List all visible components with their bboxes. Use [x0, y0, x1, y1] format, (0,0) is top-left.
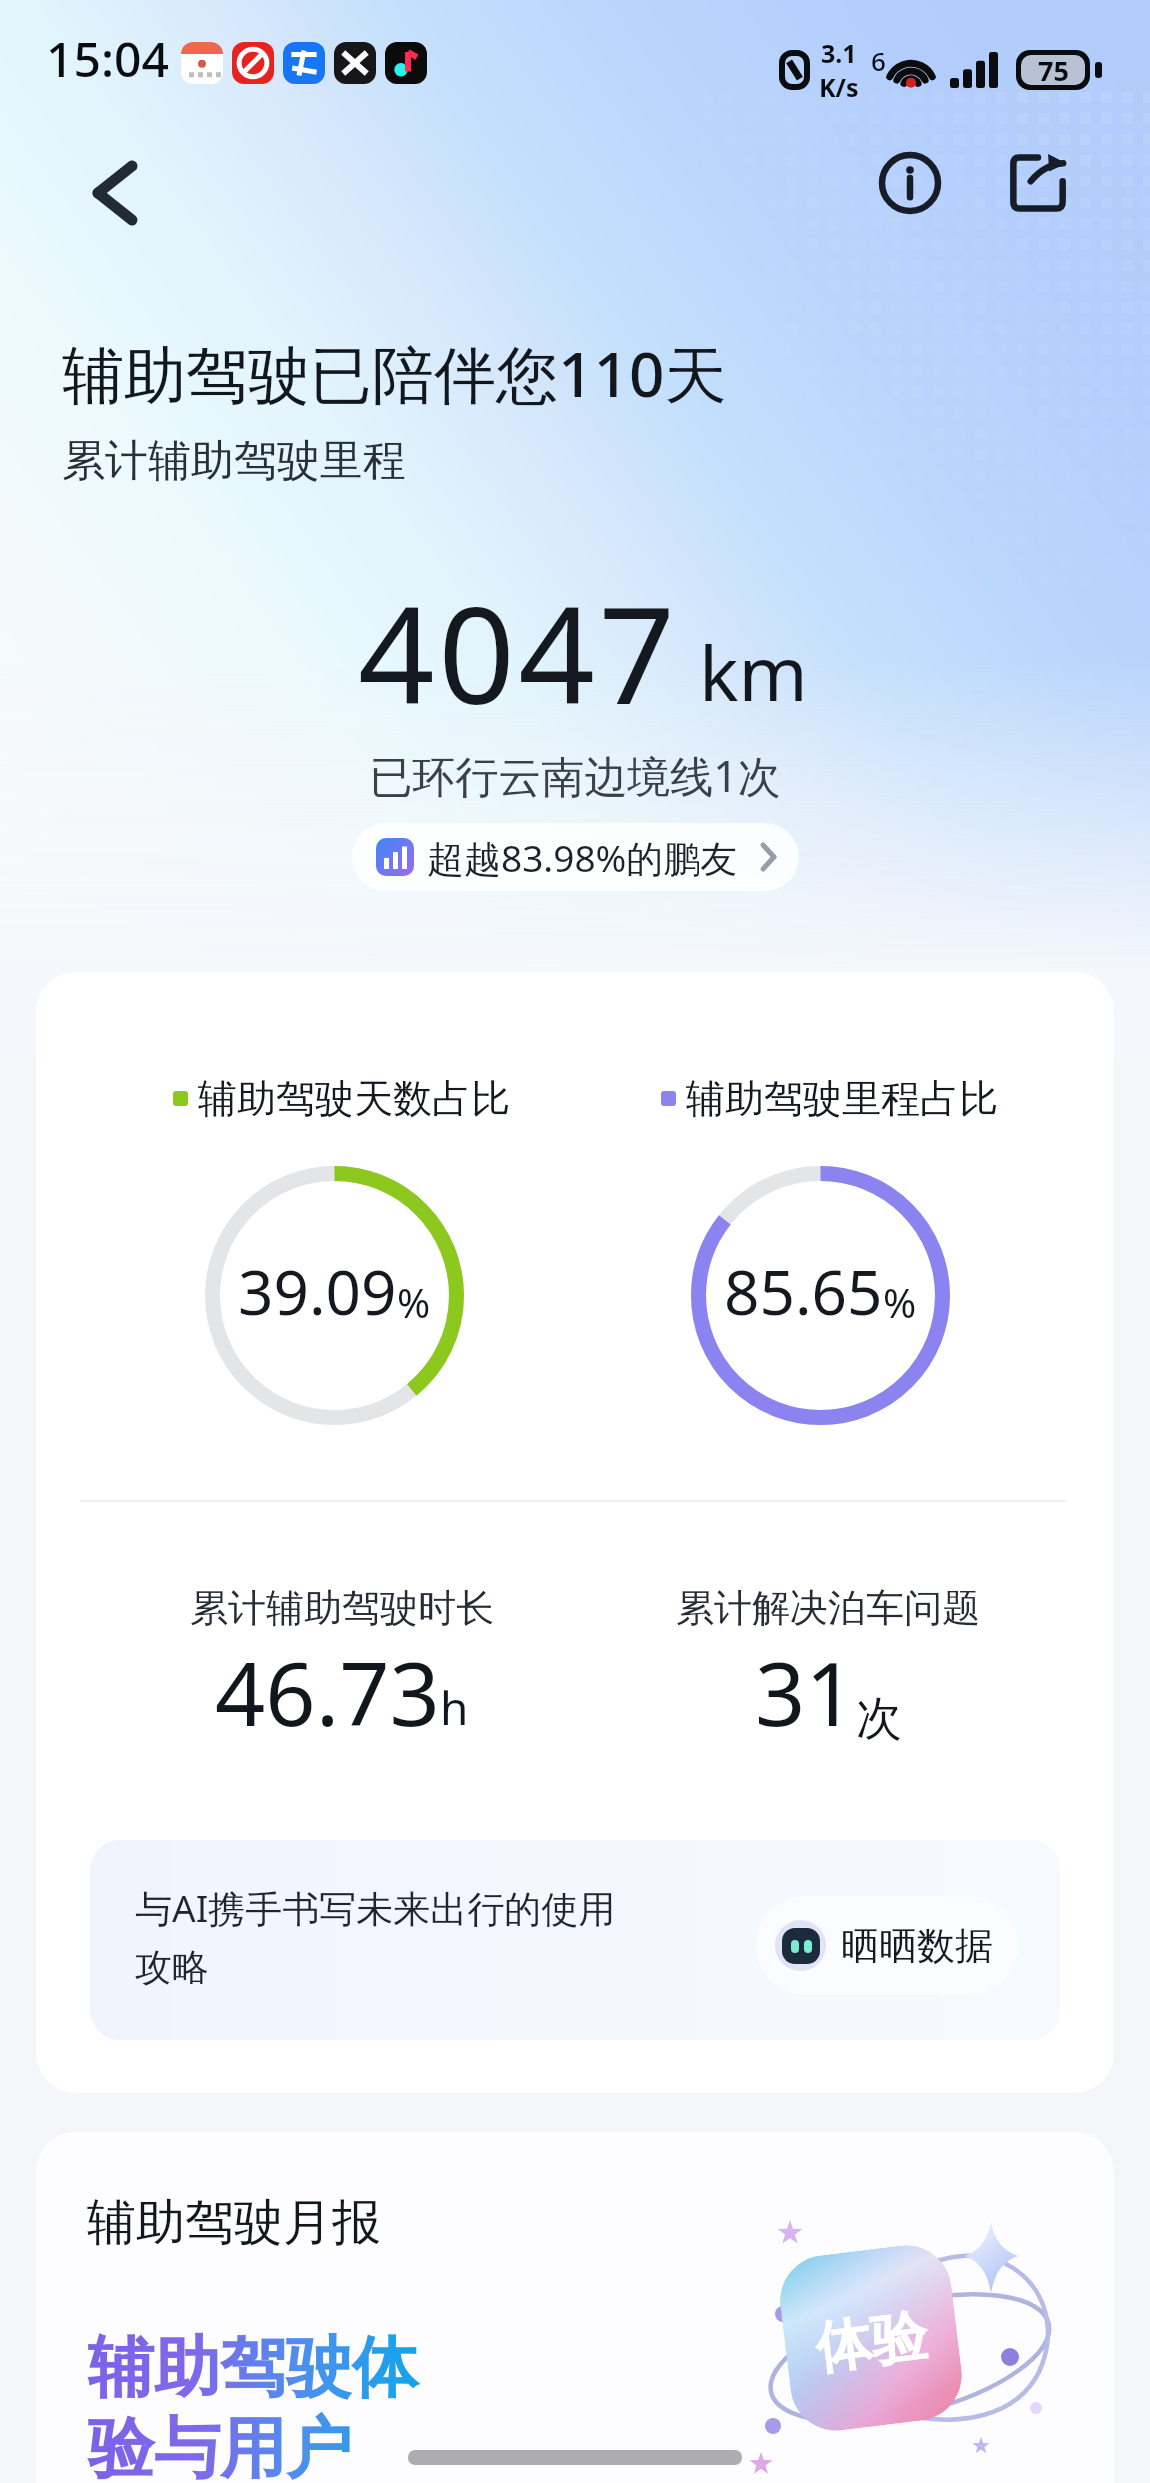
button[interactable]: 与AI携手书写未来出行的使用攻略: [90, 1840, 1060, 2040]
button[interactable]: Share: [992, 137, 1084, 229]
button[interactable]: Info: [864, 137, 956, 229]
staticText: %: [397, 1275, 431, 1329]
staticText: 超越83.98%的鹏友: [427, 832, 738, 883]
staticText: 6: [871, 43, 886, 78]
staticText: 体验: [812, 2300, 931, 2384]
staticText: 31: [755, 1632, 856, 1752]
staticText: 3.1: [821, 36, 857, 70]
staticText: 辅助驾驶天数占比: [198, 1074, 510, 1123]
staticText: 4047: [358, 561, 679, 744]
staticText: 85.65: [724, 1249, 883, 1333]
button[interactable]: 体验: [36, 2132, 1114, 2483]
staticText: 累计辅助驾驶里程: [62, 434, 406, 488]
staticText: 辅助驾驶月报: [87, 2192, 381, 2254]
staticText: 与AI携手书写未来出行的使用攻略: [135, 1882, 640, 1991]
staticText: 辅助驾驶里程占比: [686, 1074, 998, 1123]
staticText: 辅助驾驶体 验与用户: [88, 2326, 418, 2483]
staticText: K/s: [819, 70, 859, 104]
button[interactable]: 超越83.98%的鹏友: [352, 823, 799, 891]
staticText: 累计辅助驾驶时长: [190, 1584, 494, 1632]
staticText: h: [440, 1676, 469, 1739]
staticText: 39.09: [238, 1249, 397, 1333]
staticText: 46.73: [215, 1632, 440, 1752]
staticText: 晒晒数据: [841, 1922, 993, 1970]
staticText: 次: [856, 1690, 902, 1748]
button[interactable]: 晒晒数据: [756, 1896, 1018, 1995]
staticText: %: [883, 1275, 917, 1329]
staticText: 已环行云南边境线1次: [0, 746, 1150, 805]
staticText: km: [699, 622, 808, 723]
staticText: 辅助驾驶已陪伴您110天: [62, 331, 727, 416]
staticText: 75: [1038, 52, 1069, 89]
staticText: 累计解决泊车问题: [676, 1584, 980, 1632]
staticText: 15:04: [46, 26, 169, 91]
button[interactable]: Back: [69, 147, 161, 239]
